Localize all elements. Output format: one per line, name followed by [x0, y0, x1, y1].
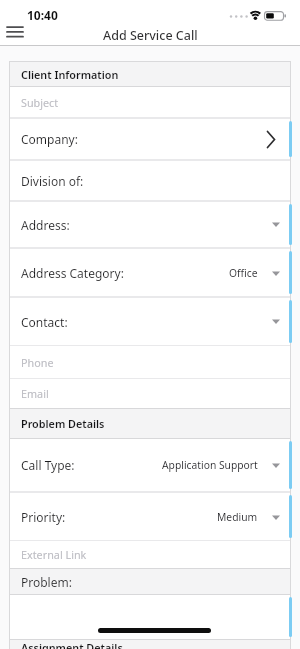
staticText: Call Type: — [21, 457, 75, 473]
staticText: Address Category: — [21, 265, 124, 281]
button[interactable]: Priority: — [10, 493, 290, 540]
staticText: Medium — [217, 510, 258, 524]
staticText: Application Support — [162, 458, 258, 472]
button[interactable]: Contact: — [10, 298, 290, 345]
button[interactable]: External Link — [10, 541, 290, 568]
button[interactable]: Email — [10, 379, 290, 408]
button[interactable]: Company: — [10, 119, 290, 159]
button[interactable]: Call Type: — [10, 439, 290, 491]
staticText: Phone — [21, 355, 54, 370]
button[interactable]: Address Category: — [10, 249, 290, 296]
staticText: Client Information — [21, 67, 119, 82]
staticText: Address: — [21, 217, 70, 233]
staticText: Assignment Details — [21, 640, 123, 649]
button[interactable]: Division of: — [10, 161, 290, 200]
button[interactable]: Phone — [10, 346, 290, 378]
button[interactable]: Address: — [10, 202, 290, 247]
button[interactable] — [10, 595, 290, 639]
staticText: Subject — [21, 95, 59, 110]
staticText: Office — [229, 266, 258, 280]
staticText: Contact: — [21, 314, 68, 330]
staticText: 10:40 — [27, 7, 58, 23]
staticText: Add Service Call — [103, 27, 198, 44]
staticText: External Link — [21, 547, 87, 562]
staticText: Division of: — [21, 173, 84, 189]
button[interactable]: Subject — [10, 87, 290, 117]
staticText: Problem: — [21, 574, 72, 590]
staticText: Problem Details — [21, 416, 105, 431]
staticText: Company: — [21, 131, 78, 147]
button[interactable] — [2, 21, 28, 42]
staticText: Email — [21, 386, 49, 401]
staticText: Priority: — [21, 509, 66, 525]
